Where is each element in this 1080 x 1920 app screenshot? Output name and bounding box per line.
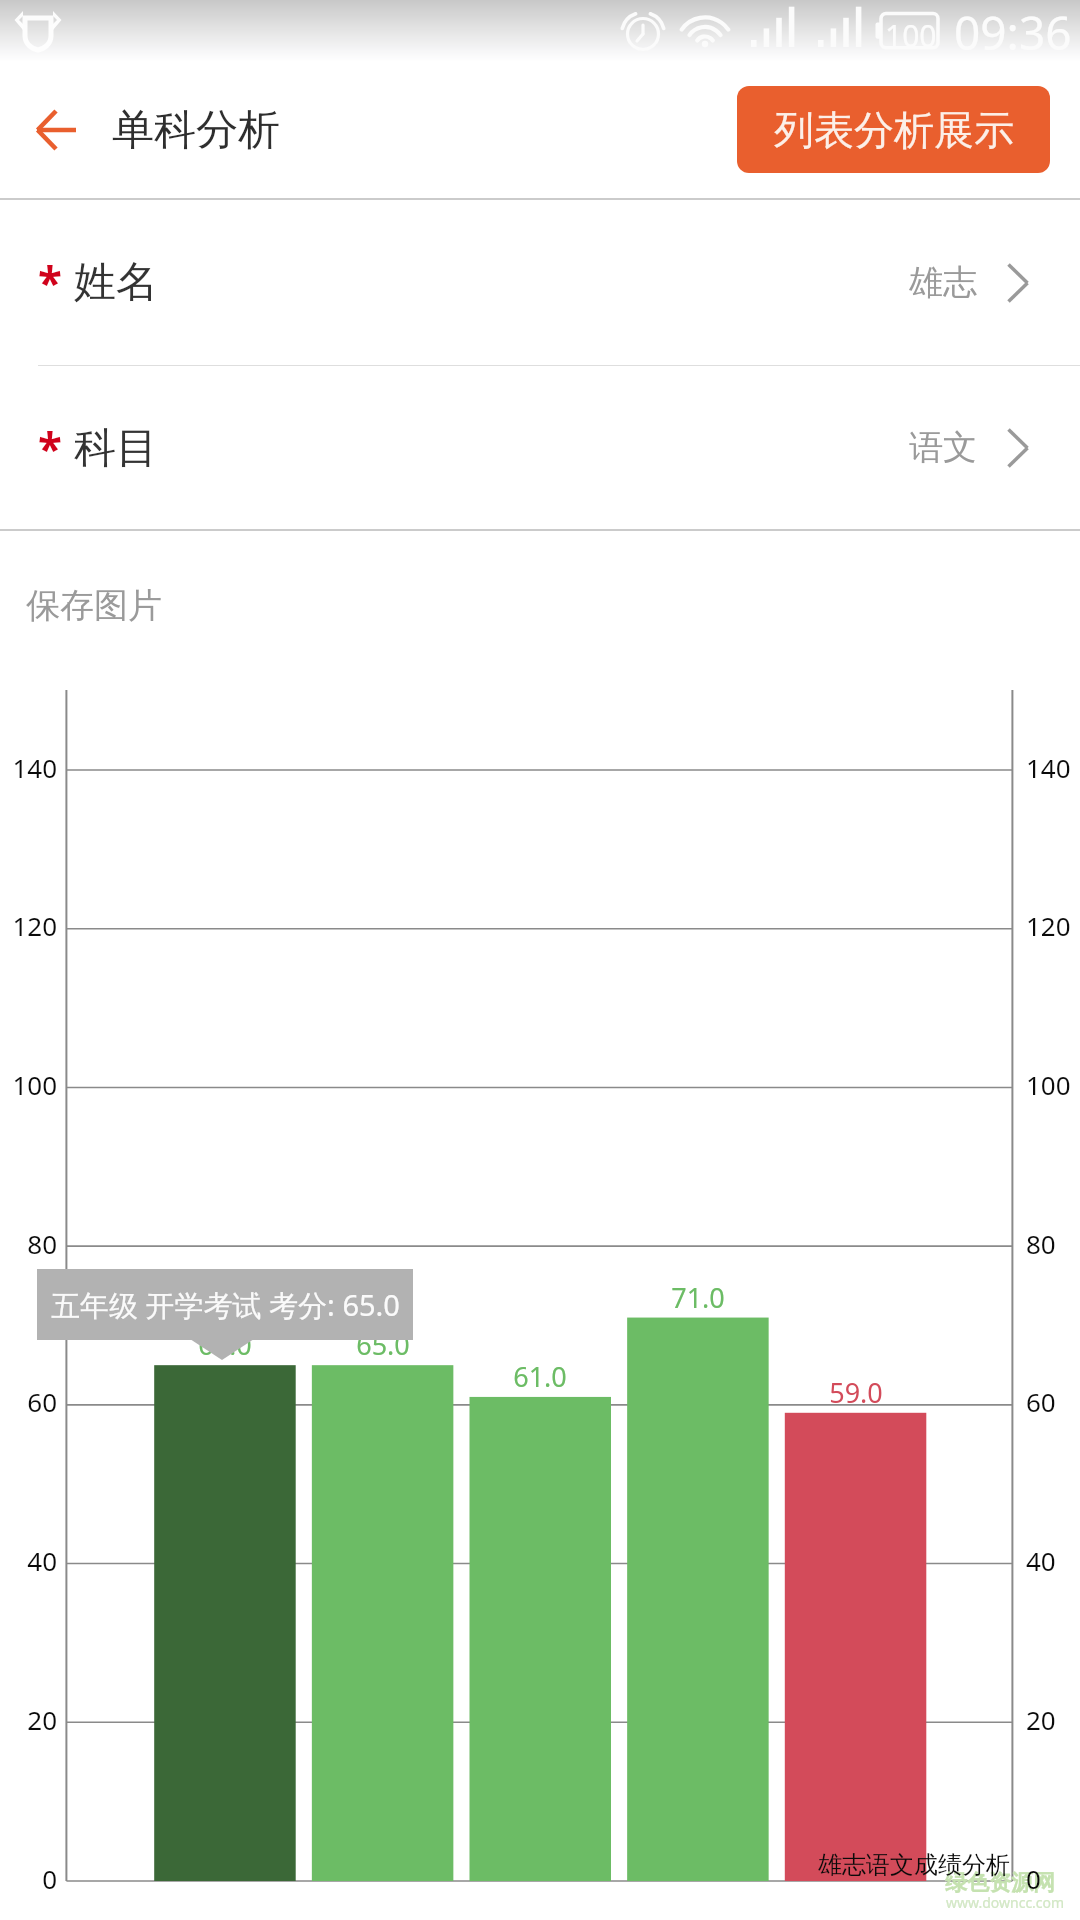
staticText: 雄志语文成绩分析 bbox=[818, 1850, 1010, 1880]
staticText: 雄志 bbox=[909, 261, 977, 304]
staticText: 20 bbox=[1026, 1702, 1056, 1737]
staticText: 0 bbox=[1026, 1861, 1041, 1896]
staticText: 100 bbox=[1026, 1067, 1071, 1102]
staticText: 71.0 bbox=[638, 1279, 758, 1316]
button[interactable]: 列表分析展示 bbox=[737, 86, 1050, 173]
staticText: 140 bbox=[0, 750, 57, 785]
staticText: 61.0 bbox=[480, 1358, 600, 1395]
staticText: 80 bbox=[1026, 1226, 1056, 1261]
staticText: 65.0 bbox=[165, 1326, 285, 1363]
staticText: 语文 bbox=[909, 426, 977, 469]
staticText: 59.0 bbox=[796, 1374, 916, 1411]
button[interactable]: 返回 bbox=[16, 90, 96, 170]
staticText: 列表分析展示 bbox=[774, 105, 1014, 155]
staticText: 40 bbox=[1026, 1543, 1056, 1578]
staticText: 姓名 bbox=[74, 256, 158, 309]
staticText: 120 bbox=[1026, 908, 1071, 943]
staticText: 单科分析 bbox=[112, 104, 280, 157]
button[interactable]: * bbox=[0, 199, 1080, 365]
staticText: 保存图片 bbox=[26, 584, 162, 627]
button[interactable]: 保存图片 bbox=[13, 567, 175, 643]
staticText: 60 bbox=[1026, 1384, 1056, 1419]
staticText: * bbox=[38, 418, 62, 478]
staticText: 65.0 bbox=[323, 1326, 443, 1363]
staticText: 120 bbox=[0, 908, 57, 943]
staticText: * bbox=[38, 252, 62, 312]
staticText: 绿色资源网 bbox=[945, 1869, 1055, 1897]
staticText: 80 bbox=[0, 1226, 57, 1261]
button[interactable]: * bbox=[0, 366, 1080, 529]
staticText: 20 bbox=[0, 1702, 57, 1737]
staticText: 0 bbox=[0, 1861, 57, 1896]
staticText: 40 bbox=[0, 1543, 57, 1578]
staticText: 100 bbox=[0, 1067, 57, 1102]
staticText: 09:36 bbox=[954, 1, 1072, 63]
staticText: 科目 bbox=[74, 422, 158, 475]
staticText: 60 bbox=[0, 1384, 57, 1419]
staticText: 100 bbox=[885, 15, 937, 56]
staticText: www.downcc.com bbox=[946, 1893, 1065, 1912]
staticText: 五年级 开学考试 考分: 65.0 bbox=[51, 1285, 400, 1325]
staticText: 140 bbox=[1026, 750, 1071, 785]
